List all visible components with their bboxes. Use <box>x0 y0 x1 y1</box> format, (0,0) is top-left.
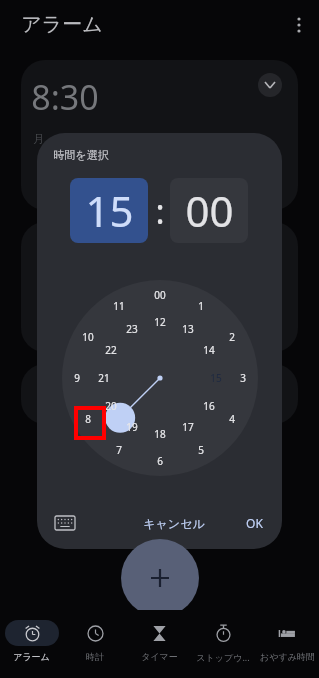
staticText: 00 <box>185 182 234 239</box>
staticText: 7 <box>116 443 122 457</box>
button[interactable]: タイマー <box>127 610 191 662</box>
staticText: 18 <box>154 427 166 441</box>
button[interactable]: 16 <box>195 397 223 415</box>
staticText: 12 <box>154 315 166 329</box>
staticText: 13 <box>182 322 194 336</box>
staticText: 15 <box>85 182 134 239</box>
button[interactable]: 18 <box>146 425 174 443</box>
staticText: おやすみ時間 <box>260 651 315 662</box>
button[interactable]: 13 <box>174 320 202 338</box>
staticText: OK <box>246 515 263 531</box>
staticText: 1 <box>198 299 204 313</box>
button[interactable]: 2 <box>218 328 246 346</box>
button[interactable]: 17 <box>174 418 202 436</box>
button[interactable]: 7 <box>105 441 133 459</box>
staticText: 6 <box>157 454 163 468</box>
staticText: 時計 <box>86 651 104 662</box>
button[interactable]: 20 <box>97 397 125 415</box>
button[interactable]: 時計 <box>63 610 127 662</box>
button[interactable]: 1 <box>187 297 215 315</box>
button[interactable]: 21 <box>90 369 118 387</box>
button[interactable]: ストップウ... <box>191 610 255 663</box>
button[interactable]: 15 <box>70 178 148 243</box>
button[interactable]: 22 <box>97 341 125 359</box>
staticText: 20 <box>105 399 117 413</box>
button[interactable]: 12 <box>146 313 174 331</box>
staticText: 15 <box>210 371 222 385</box>
button[interactable]: 3 <box>229 369 257 387</box>
staticText: 8 <box>85 412 91 426</box>
staticText: 9 <box>74 371 80 385</box>
staticText: ストップウ... <box>196 651 250 663</box>
button[interactable]: OK <box>234 507 274 539</box>
staticText: 10 <box>82 330 94 344</box>
staticText: 5 <box>198 443 204 457</box>
button[interactable]: 8 <box>74 410 102 428</box>
staticText: 2 <box>229 330 235 344</box>
button[interactable]: 4 <box>218 410 246 428</box>
button[interactable]: 00 <box>170 178 248 243</box>
button[interactable]: 8:30 <box>21 60 298 210</box>
staticText: 月 <box>33 132 44 146</box>
staticText: タイマー <box>141 651 178 662</box>
button[interactable]: 14 <box>195 341 223 359</box>
staticText: 17 <box>182 420 194 434</box>
staticText: 11 <box>113 299 125 313</box>
button[interactable]: 10 <box>74 328 102 346</box>
staticText: 19 <box>126 420 138 434</box>
button[interactable]: おやすみ時間 <box>255 610 319 662</box>
button[interactable]: 6 <box>146 452 174 470</box>
button[interactable]: Switch to text input <box>50 508 80 538</box>
staticText: 4 <box>229 412 235 426</box>
button[interactable]: 9 <box>63 369 91 387</box>
staticText: 00 <box>154 288 166 302</box>
button[interactable]: 5 <box>187 441 215 459</box>
staticText: アラーム <box>13 651 50 662</box>
staticText: 8:30 <box>31 74 99 120</box>
staticText: 21 <box>98 371 110 385</box>
button[interactable]: 15 <box>202 369 230 387</box>
button[interactable]: 00 <box>146 286 174 304</box>
button[interactable]: アラーム <box>0 610 63 662</box>
button[interactable] <box>21 222 298 352</box>
staticText: 時間を選択 <box>53 148 109 162</box>
staticText: アラーム <box>21 12 103 37</box>
button[interactable] <box>21 364 298 424</box>
button[interactable]: 19 <box>118 418 146 436</box>
button[interactable]: キャンセル <box>141 507 207 539</box>
staticText: 23 <box>126 322 138 336</box>
staticText: : <box>155 188 165 234</box>
staticText: 16 <box>203 399 215 413</box>
staticText: 3 <box>240 371 246 385</box>
button[interactable]: More options <box>288 14 310 36</box>
staticText: 14 <box>203 343 215 357</box>
button[interactable]: Expand <box>258 73 282 97</box>
button[interactable]: 11 <box>105 297 133 315</box>
staticText: 22 <box>105 343 117 357</box>
staticText: キャンセル <box>143 516 205 531</box>
button[interactable]: Add alarm <box>121 539 199 617</box>
button[interactable]: 23 <box>118 320 146 338</box>
